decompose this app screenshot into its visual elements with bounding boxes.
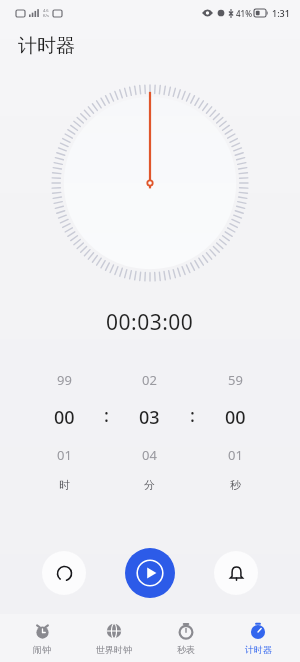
button[interactable]: 计时器 [222,617,294,659]
staticText: 01 [228,446,243,464]
staticText: 4.6 [43,8,49,13]
staticText: 计时器 [18,34,75,58]
button[interactable]: 59 [195,371,276,492]
staticText: 00 [54,405,75,430]
staticText: 03 [139,405,160,430]
staticText: 99 [57,371,72,389]
staticText: 00 [225,405,246,430]
button[interactable]: Ringtone [214,551,258,595]
staticText: 00:03:00 [106,308,194,337]
staticText: 闹钟 [33,644,51,655]
staticText: 59 [228,371,243,389]
staticText: 04 [142,446,157,464]
staticText: 02 [142,371,157,389]
staticText: 秒表 [177,644,195,655]
staticText: 41% [236,8,252,19]
staticText: : [190,403,195,428]
button[interactable]: 闹钟 [6,617,78,659]
staticText: 秒 [230,478,241,492]
button[interactable]: Reset [42,551,86,595]
staticText: : [104,403,109,428]
staticText: 分 [144,478,155,492]
staticText: 时 [59,478,70,492]
button[interactable]: Start [125,548,175,598]
staticText: 计时器 [245,644,272,655]
staticText: 1:31 [272,7,290,19]
button[interactable]: 秒表 [150,617,222,659]
staticText: K/s [43,13,49,18]
button[interactable]: 02 [109,371,190,492]
button[interactable]: 世界时钟 [78,617,150,659]
staticText: 01 [57,446,72,464]
button[interactable]: 99 [24,371,104,492]
staticText: 世界时钟 [96,644,132,655]
